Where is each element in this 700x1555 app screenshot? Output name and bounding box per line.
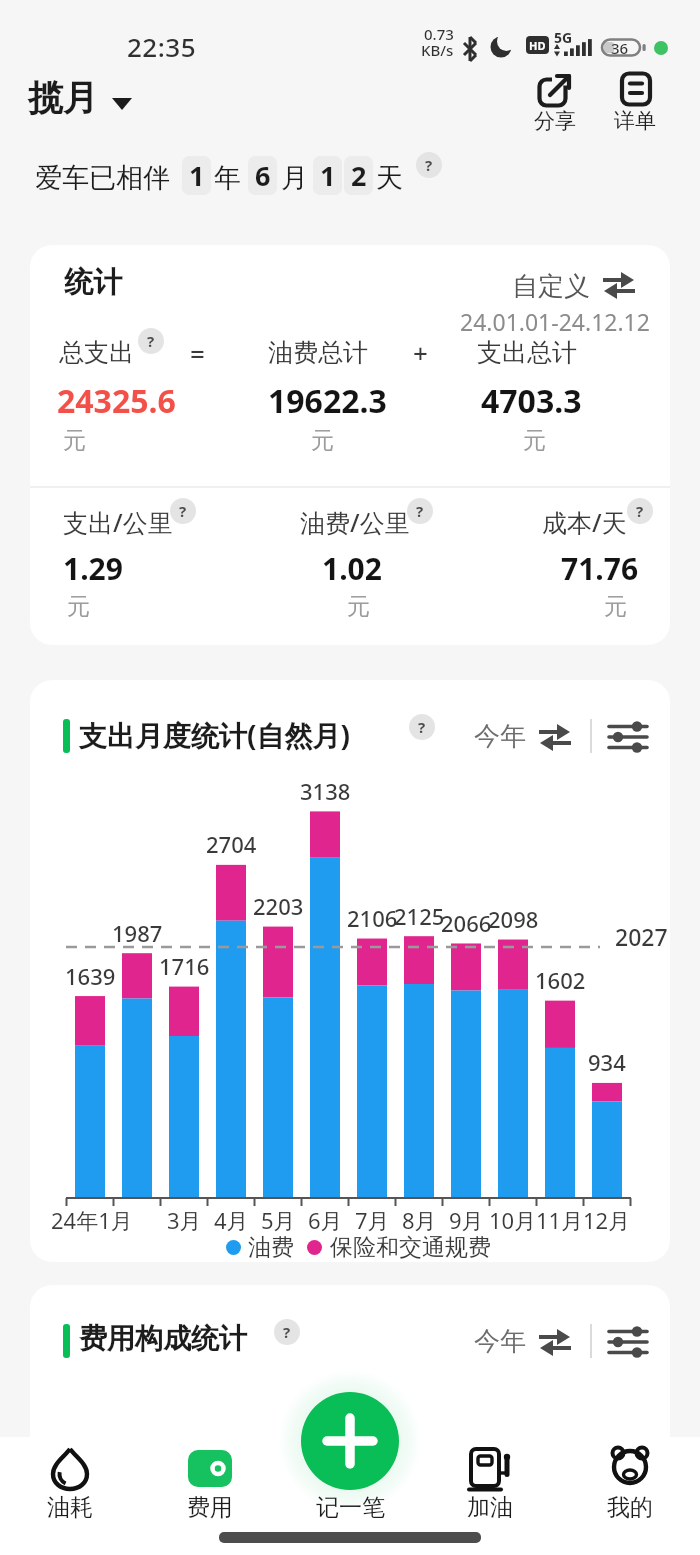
staticText: 2066 <box>441 908 492 938</box>
staticText: 今年 <box>474 1325 526 1358</box>
staticText: 3月 <box>167 1205 202 1235</box>
staticText: 今年 <box>474 720 526 753</box>
staticText: 6 <box>255 157 271 194</box>
staticText: ? <box>418 717 426 737</box>
staticText: 3138 <box>300 776 351 806</box>
staticText: 1639 <box>65 961 116 991</box>
staticText: 2027 <box>615 921 668 952</box>
staticText: 统计 <box>64 264 122 301</box>
button[interactable]: 我的 <box>590 1440 670 1524</box>
staticText: 成本/天 <box>542 505 627 539</box>
button[interactable] <box>608 1328 648 1356</box>
staticText: 5月 <box>261 1205 296 1235</box>
staticText: 22:35 <box>127 29 197 64</box>
staticText: 24年1月 <box>51 1205 133 1235</box>
staticText: = <box>190 335 205 370</box>
staticText: 71.76 <box>561 548 639 589</box>
button[interactable]: 详单 <box>614 70 664 134</box>
staticText: 6月 <box>308 1205 343 1235</box>
staticText: 加油 <box>467 1493 513 1522</box>
staticText: 1987 <box>112 918 163 948</box>
staticText: 8月 <box>402 1205 437 1235</box>
staticText: 保险和交通规费 <box>330 1233 491 1262</box>
staticText: 支出总计 <box>477 337 577 368</box>
button[interactable] <box>301 1392 399 1490</box>
staticText: 2125 <box>394 901 445 931</box>
staticText: 1 <box>320 157 336 194</box>
staticText: 费用 <box>187 1493 233 1522</box>
button[interactable]: 加油 <box>450 1440 530 1524</box>
staticText: 0.73 <box>424 24 454 44</box>
staticText: 2098 <box>488 904 539 934</box>
staticText: 1716 <box>159 951 210 981</box>
staticText: 揽月 <box>28 76 98 120</box>
staticText: 934 <box>588 1047 626 1077</box>
staticText: 支出月度统计(自然月) <box>79 716 350 754</box>
staticText: 24.01.01-24.12.12 <box>460 306 650 337</box>
staticText: ? <box>416 501 424 521</box>
staticText: 10月 <box>489 1205 537 1235</box>
staticText: 元 <box>63 426 86 455</box>
staticText: 1.02 <box>322 548 382 589</box>
staticText: 9月 <box>449 1205 484 1235</box>
staticText: 分享 <box>534 108 576 134</box>
staticText: 4703.3 <box>481 379 582 423</box>
staticText: ? <box>147 331 155 351</box>
staticText: 自定义 <box>512 270 590 303</box>
staticText: 记一笔 <box>316 1493 385 1522</box>
staticText: 月 <box>281 161 308 195</box>
staticText: 12月 <box>583 1205 631 1235</box>
staticText: 元 <box>347 592 370 621</box>
button[interactable]: 自定义 <box>510 268 640 302</box>
staticText: 年 <box>214 161 241 195</box>
staticText: 我的 <box>607 1493 653 1522</box>
staticText: HD <box>529 38 546 53</box>
staticText: ? <box>425 155 433 175</box>
staticText: 支出/公里 <box>63 505 173 539</box>
staticText: 1 <box>189 157 205 194</box>
staticText: 36 <box>611 38 629 56</box>
button[interactable]: 分享 <box>534 70 584 134</box>
staticText: 油费总计 <box>268 337 368 368</box>
staticText: 总支出 <box>59 337 134 368</box>
button[interactable]: 费用 <box>170 1440 250 1524</box>
staticText: 24325.6 <box>57 379 176 423</box>
staticText: 2106 <box>347 903 398 933</box>
staticText: 费用构成统计 <box>79 1321 247 1356</box>
button[interactable] <box>538 1328 572 1356</box>
staticText: KB/s <box>421 40 454 60</box>
staticText: 1602 <box>535 965 586 995</box>
staticText: 元 <box>604 592 627 621</box>
staticText: 4月 <box>214 1205 249 1235</box>
button[interactable] <box>602 271 636 299</box>
staticText: 11月 <box>536 1205 584 1235</box>
staticText: 2203 <box>253 891 304 921</box>
staticText: 元 <box>311 426 334 455</box>
staticText: 1.29 <box>63 548 123 589</box>
staticText: 油费/公里 <box>300 505 410 539</box>
staticText: 19622.3 <box>268 379 387 423</box>
staticText: 2704 <box>206 829 257 859</box>
staticText: 5G <box>554 28 573 47</box>
staticText: ? <box>283 1322 291 1342</box>
button[interactable] <box>538 723 572 751</box>
staticText: 爱车已相伴 <box>35 161 170 195</box>
staticText: 天 <box>376 161 403 195</box>
button[interactable]: 油耗 <box>30 1440 110 1524</box>
staticText: 7月 <box>355 1205 390 1235</box>
button[interactable] <box>608 723 648 751</box>
staticText: 详单 <box>614 108 656 134</box>
staticText: 元 <box>67 592 90 621</box>
staticText: ? <box>636 501 644 521</box>
button[interactable]: 揽月 <box>28 76 98 122</box>
staticText: + <box>413 335 428 370</box>
staticText: 元 <box>523 426 546 455</box>
staticText: ? <box>179 501 187 521</box>
staticText: 2 <box>351 157 367 194</box>
staticText: 油费 <box>248 1233 294 1262</box>
staticText: 油耗 <box>47 1493 93 1522</box>
